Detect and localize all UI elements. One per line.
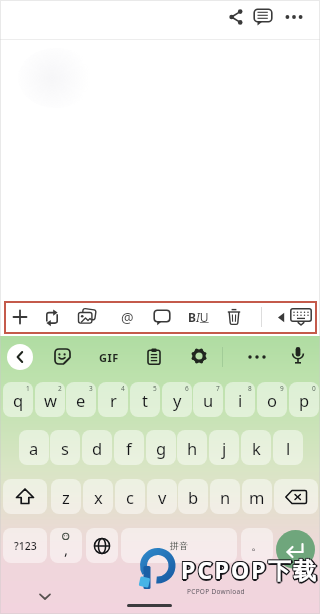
staticText: t [142,389,148,411]
button[interactable] [7,344,33,370]
button[interactable]: p [289,382,319,417]
button[interactable]: z [51,479,81,514]
button[interactable] [246,349,268,365]
button[interactable] [147,348,161,365]
staticText: v [158,486,167,508]
staticText: PCPOP下载 [182,553,320,584]
button[interactable]: v [147,479,177,514]
staticText: c [126,486,134,508]
staticText: 拼音 [170,540,188,551]
button[interactable]: 。 [241,528,273,563]
button[interactable]: , [50,528,82,563]
button[interactable] [253,8,273,26]
button[interactable] [274,479,318,514]
button[interactable]: r [98,382,128,417]
button[interactable]: x [83,479,113,514]
button[interactable]: w [35,382,65,417]
button[interactable]: o [257,382,287,417]
staticText: 。 [251,538,263,553]
button[interactable]: i [225,382,255,417]
button[interactable] [77,308,97,326]
staticText: e [76,389,86,411]
staticText: h [187,437,198,459]
staticText: s [61,437,69,459]
button[interactable]: j [209,430,239,465]
button[interactable]: t [130,382,160,417]
staticText: PCPOP下载 [180,555,318,586]
button[interactable] [277,312,286,323]
staticText: 7 [216,384,220,393]
staticText: r [110,389,117,411]
staticText: w [44,389,57,411]
staticText: 0 [312,384,316,393]
button[interactable]: q [3,382,33,417]
staticText: PCPOP下载 [182,555,320,586]
button[interactable]: ?123 [3,528,47,563]
button[interactable]: f [114,430,144,465]
button[interactable] [285,9,303,25]
staticText: PCPOP下载 [180,553,318,584]
staticText: 9 [280,384,284,393]
staticText: d [92,437,103,459]
staticText: ?123 [14,539,37,553]
staticText: g [156,437,167,459]
button[interactable]: m [242,479,272,514]
staticText: BIU [188,309,209,325]
staticText: @ [121,308,134,327]
staticText: 3 [89,384,93,393]
button[interactable]: GIF [94,347,124,367]
staticText: 2 [58,384,62,393]
staticText: PCPOP下载 [181,556,319,587]
button[interactable]: b [178,479,208,514]
button[interactable] [153,309,171,326]
button[interactable]: g [146,430,176,465]
staticText: l [286,437,291,459]
staticText: 8 [248,384,252,393]
staticText: PCPOP下载 [183,554,320,585]
staticText: k [252,437,261,459]
button[interactable] [38,592,52,602]
staticText: PCPOP下载 [181,553,319,584]
staticText: 4 [121,384,125,393]
staticText: x [94,486,103,508]
staticText: a [29,437,39,459]
button[interactable] [86,528,118,563]
button[interactable]: y [162,382,192,417]
button[interactable] [226,308,242,326]
button[interactable]: BIU [183,306,213,328]
staticText: q [13,389,24,411]
button[interactable]: n [210,479,240,514]
staticText: j [222,437,227,459]
staticText: z [62,486,70,508]
button[interactable] [227,8,245,26]
button[interactable]: u [193,382,223,417]
staticText: 6 [185,384,189,393]
button[interactable] [3,479,47,514]
button[interactable]: h [177,430,207,465]
button[interactable]: a [19,430,49,465]
button[interactable] [276,530,315,569]
button[interactable]: 拼音 [121,528,237,563]
button[interactable]: l [273,430,303,465]
staticText: y [173,389,182,411]
button[interactable] [190,347,208,365]
staticText: PCPOP下载 [180,554,318,585]
button[interactable]: e [66,382,96,417]
staticText: , [64,539,69,559]
staticText: GIF [99,350,119,365]
button[interactable]: s [50,430,80,465]
button[interactable] [54,348,71,365]
button[interactable]: d [82,430,112,465]
staticText: f [126,437,132,459]
button[interactable]: k [241,430,271,465]
staticText: 1 [26,384,30,393]
button[interactable] [12,309,28,325]
staticText: i [238,389,243,411]
button[interactable] [290,308,312,326]
button[interactable] [42,308,62,326]
staticText: PCPOP下载 [181,554,319,585]
button[interactable]: c [115,479,145,514]
staticText: u [203,389,214,411]
staticText: 5 [153,384,157,393]
button[interactable] [291,346,305,366]
